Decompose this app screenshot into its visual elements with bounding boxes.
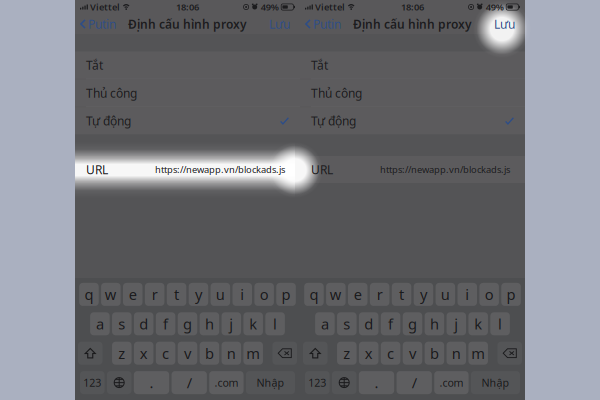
button[interactable]: Tắt [300, 51, 525, 79]
button[interactable]: x [359, 342, 378, 365]
staticText: a [96, 314, 104, 334]
button[interactable]: . [134, 371, 169, 394]
button[interactable]: d [134, 312, 153, 335]
staticText: z [343, 343, 350, 363]
button[interactable]: i [457, 283, 477, 306]
button[interactable]: e [123, 283, 142, 306]
button[interactable]: i [232, 283, 252, 306]
button[interactable]: u [211, 283, 230, 306]
button[interactable]: f [156, 312, 175, 335]
button[interactable]: c [381, 342, 400, 365]
button[interactable]: Next keyboard [107, 371, 131, 394]
staticText: g [408, 314, 417, 334]
button[interactable]: l [490, 312, 510, 335]
button[interactable]: j [446, 312, 466, 335]
button[interactable]: Lưu [486, 14, 525, 34]
button[interactable]: Nhập [471, 371, 520, 394]
staticText: Tắt [86, 57, 103, 73]
button[interactable]: v [403, 342, 422, 365]
button[interactable]: b [200, 342, 219, 365]
button[interactable]: h [425, 312, 444, 335]
button[interactable]: Thủ công [300, 79, 525, 107]
button[interactable]: Shift [303, 342, 327, 365]
button[interactable]: r [370, 283, 389, 306]
button[interactable]: j [222, 312, 241, 335]
button[interactable]: Shift [78, 342, 102, 365]
staticText: t [174, 285, 179, 304]
button[interactable]: w [326, 283, 346, 306]
staticText: Nhập [256, 375, 284, 390]
staticText: t [399, 285, 404, 304]
button[interactable]: m [468, 342, 488, 365]
button[interactable]: c [156, 342, 175, 365]
button[interactable]: h [200, 312, 219, 335]
button[interactable]: / [397, 371, 432, 394]
button[interactable]: u [436, 283, 455, 306]
staticText: URL [86, 161, 108, 177]
button[interactable]: z [112, 342, 131, 365]
staticText: l [498, 314, 502, 334]
button[interactable]: z [337, 342, 357, 365]
button[interactable]: .com [209, 371, 243, 394]
button[interactable]: / [172, 371, 207, 394]
button[interactable]: g [178, 312, 197, 335]
button[interactable]: d [359, 312, 378, 335]
staticText: . [149, 373, 153, 392]
button[interactable]: n [222, 342, 241, 365]
staticText: d [139, 314, 148, 334]
staticText: p [507, 285, 516, 304]
button[interactable]: n [447, 342, 466, 365]
button[interactable]: Tắt [75, 51, 300, 79]
button[interactable]: a [90, 312, 110, 335]
button[interactable]: 123 [305, 371, 330, 394]
button[interactable]: o [254, 283, 274, 306]
button[interactable]: Putin [300, 14, 349, 34]
button[interactable]: v [178, 342, 197, 365]
button[interactable]: y [414, 283, 433, 306]
button[interactable]: t [392, 283, 411, 306]
button[interactable]: Delete [272, 342, 297, 365]
staticText: f [388, 314, 393, 334]
button[interactable]: Delete [497, 342, 522, 365]
staticText: a [321, 314, 329, 334]
button[interactable]: . [359, 371, 394, 394]
button[interactable]: f [381, 312, 400, 335]
button[interactable]: p [501, 283, 521, 306]
button[interactable]: e [348, 283, 367, 306]
button[interactable]: o [479, 283, 499, 306]
button[interactable]: 123 [80, 371, 105, 394]
button[interactable]: Lưu [261, 14, 300, 34]
button[interactable]: w [101, 283, 121, 306]
button[interactable]: Putin [75, 14, 124, 34]
button[interactable]: b [425, 342, 444, 365]
button[interactable]: k [468, 312, 488, 335]
button[interactable]: Next keyboard [332, 371, 356, 394]
staticText: Định cấu hình proxy [128, 16, 247, 32]
button[interactable]: Tự động [75, 107, 300, 134]
staticText: n [227, 343, 236, 363]
button[interactable]: p [276, 283, 296, 306]
button[interactable]: s [112, 312, 132, 335]
button[interactable]: Thủ công [75, 79, 300, 107]
button[interactable]: URL [300, 156, 525, 183]
staticText: Putin [88, 16, 116, 32]
button[interactable]: g [403, 312, 422, 335]
staticText: w [105, 285, 117, 304]
button[interactable]: l [265, 312, 285, 335]
button[interactable]: m [243, 342, 263, 365]
button[interactable]: s [337, 312, 356, 335]
staticText: 123 [308, 375, 326, 390]
button[interactable]: k [243, 312, 263, 335]
button[interactable]: x [134, 342, 153, 365]
button[interactable]: q [304, 283, 324, 306]
button[interactable]: r [145, 283, 164, 306]
button[interactable]: .com [434, 371, 468, 394]
button[interactable]: a [315, 312, 335, 335]
button[interactable]: URL [75, 156, 300, 183]
button[interactable]: Nhập [246, 371, 295, 394]
button[interactable]: t [167, 283, 186, 306]
button[interactable]: q [79, 283, 99, 306]
button[interactable]: Tự động [300, 107, 525, 134]
button[interactable]: y [189, 283, 208, 306]
staticText: Putin [313, 16, 341, 32]
